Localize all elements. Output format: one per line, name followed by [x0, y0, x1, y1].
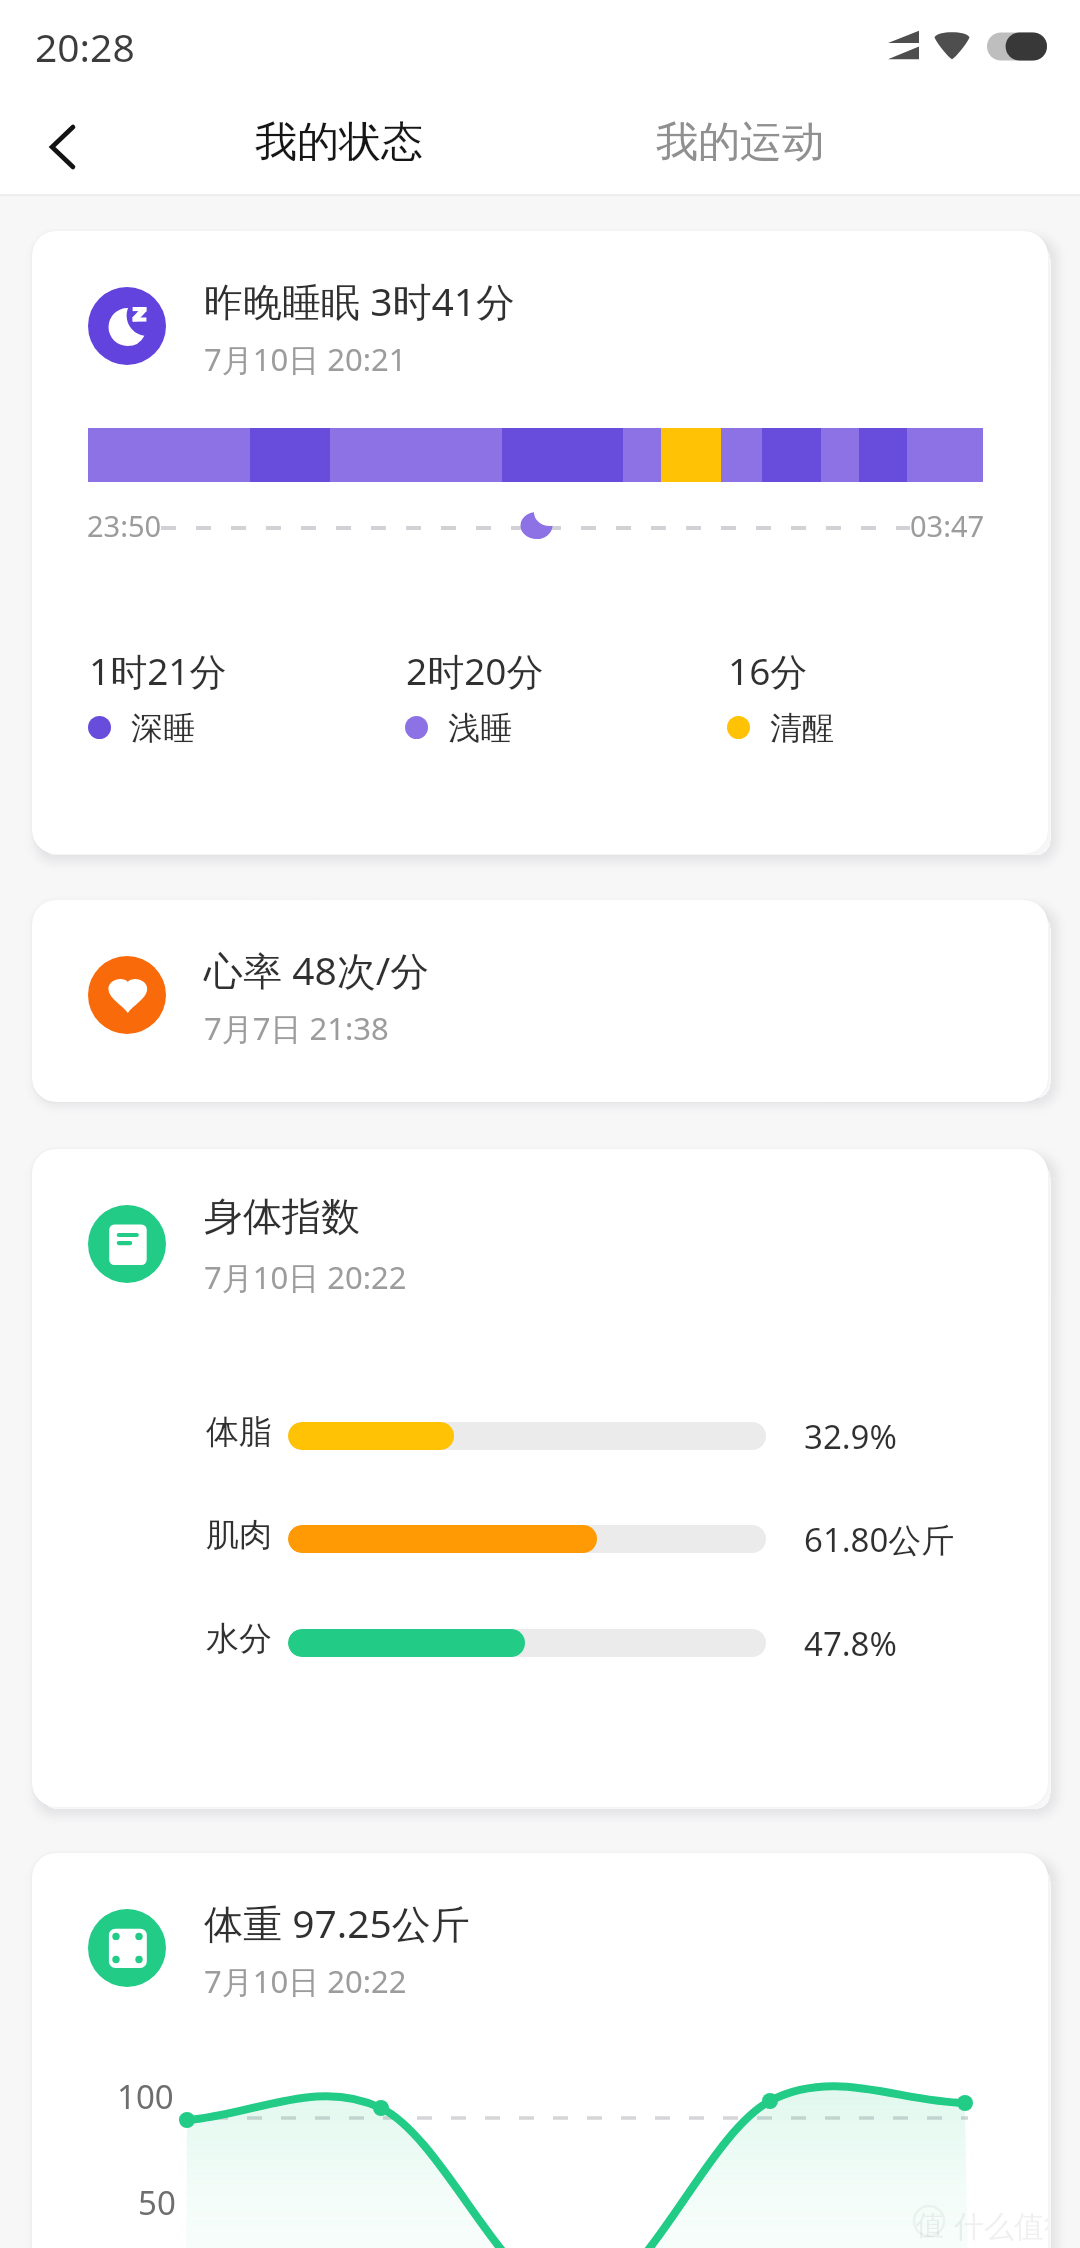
staticText: 心率 48次/分 — [204, 943, 430, 996]
staticText: 32.9% — [804, 1414, 1048, 1459]
staticText: 我的运动 — [656, 116, 824, 169]
button[interactable]: Back — [17, 112, 87, 182]
staticText: 肌肉 — [206, 1514, 272, 1556]
staticText: 7月7日 21:38 — [204, 1007, 389, 1049]
staticText: 深睡 — [131, 708, 195, 748]
staticText: 20:28 — [35, 20, 135, 73]
staticText: 值 — [916, 2208, 944, 2243]
staticText: 23:50 — [87, 506, 162, 545]
staticText: 1时21分 — [89, 645, 227, 696]
staticText: 7月10日 20:22 — [204, 1256, 407, 1298]
staticText: 47.8% — [804, 1621, 1048, 1666]
button[interactable]: 身体指数 — [32, 1149, 1048, 1807]
staticText: 清醒 — [770, 708, 834, 748]
button[interactable]: 我的状态 — [238, 96, 440, 195]
staticText: 我的状态 — [255, 116, 423, 169]
staticText: 03:47 — [910, 506, 985, 545]
staticText: 16分 — [728, 645, 808, 696]
staticText: 7月10日 20:21 — [204, 338, 407, 380]
staticText: 2时20分 — [406, 645, 544, 696]
staticText: 水分 — [206, 1618, 272, 1660]
staticText: 50 — [138, 2180, 176, 2225]
button[interactable]: 昨晚睡眠 3时41分 — [32, 231, 1048, 854]
staticText: 浅睡 — [448, 708, 512, 748]
staticText: 61.80公斤 — [804, 1517, 1048, 1562]
button[interactable]: 体重 97.25公斤 — [32, 1853, 1048, 2248]
staticText: 100 — [117, 2074, 174, 2119]
staticText: 身体指数 — [204, 1192, 360, 1241]
staticText: 7月10日 20:22 — [204, 1960, 407, 2002]
staticText: 昨晚睡眠 3时41分 — [204, 274, 516, 327]
button[interactable]: 心率 48次/分 — [32, 900, 1048, 1102]
staticText: 体重 97.25公斤 — [204, 1896, 470, 1949]
button[interactable]: 我的运动 — [639, 96, 841, 195]
staticText: 什么值得买 — [954, 2208, 1048, 2246]
staticText: 体脂 — [206, 1411, 272, 1453]
